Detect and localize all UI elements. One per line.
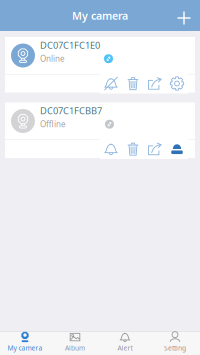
button[interactable]: Setting	[150, 332, 200, 355]
staticText: DC07C1FC1E0	[40, 39, 100, 51]
button[interactable]: Notifications	[100, 139, 122, 159]
staticText: Online	[40, 53, 65, 64]
staticText: My camera	[7, 344, 42, 352]
button[interactable]: DC07C1FC1E0	[5, 37, 195, 74]
button[interactable]: Delete	[122, 73, 144, 93]
staticText: Setting	[164, 344, 186, 352]
button[interactable]: Share	[144, 73, 166, 93]
button[interactable]: Notifications	[100, 73, 122, 93]
staticText: My camera	[72, 8, 128, 23]
button[interactable]: Alert	[100, 332, 150, 355]
staticText: Alert	[117, 344, 132, 352]
button[interactable]: Album	[50, 332, 100, 355]
button[interactable]: Share	[144, 139, 166, 159]
button[interactable]: Add camera	[170, 4, 198, 32]
button[interactable]: DC07C1FCBB7	[5, 102, 195, 139]
staticText: Offline	[40, 119, 66, 129]
staticText: Album	[65, 344, 85, 352]
button[interactable]: Sleep mode	[166, 139, 188, 159]
button[interactable]: Delete	[122, 139, 144, 159]
button[interactable]: My camera	[0, 332, 50, 355]
staticText: DC07C1FCBB7	[40, 104, 102, 117]
button[interactable]: Settings	[166, 73, 188, 93]
